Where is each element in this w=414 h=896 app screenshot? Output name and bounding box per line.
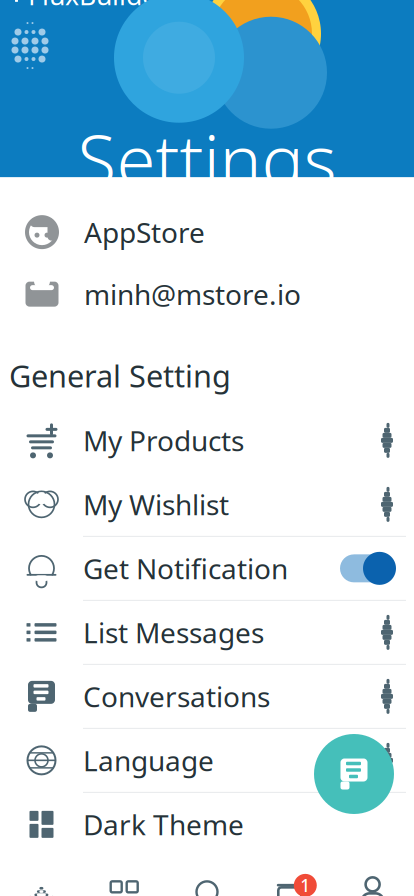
staticText: My Wishlist [83, 486, 229, 523]
staticText: AppStore [84, 213, 205, 251]
staticText: Conversations [83, 678, 270, 715]
button[interactable]: AppStore [0, 201, 414, 263]
staticText: Settings [77, 112, 336, 205]
button[interactable]: Get Notification [0, 537, 414, 600]
staticText: My Products [83, 422, 244, 459]
button[interactable]: Cart [248, 864, 331, 896]
button[interactable]: List Messages [0, 601, 414, 664]
button[interactable]: Home [0, 864, 83, 896]
button[interactable]: Conversations [0, 665, 414, 728]
button[interactable]: Back to FluxBuilder [7, 0, 172, 15]
button[interactable]: Language [0, 729, 414, 792]
staticText: minh@mstore.io [84, 275, 301, 313]
button[interactable]: My Wishlist [0, 473, 414, 536]
button[interactable]: Search [166, 864, 248, 896]
staticText: Get Notification [83, 550, 288, 587]
button[interactable]: minh@mstore.io [0, 263, 414, 325]
button[interactable]: Chat [314, 734, 394, 814]
staticText: 1 [300, 874, 310, 896]
staticText: List Messages [83, 614, 264, 651]
button[interactable]: Dark Theme [0, 793, 414, 856]
button[interactable]: Account [331, 864, 414, 896]
staticText: General Setting [9, 355, 231, 396]
staticText: Language [83, 742, 214, 779]
button[interactable]: My Products [0, 409, 414, 472]
button[interactable]: Categories [83, 864, 166, 896]
staticText: Dark Theme [83, 806, 244, 843]
staticText: FluxBuilder [28, 0, 168, 12]
